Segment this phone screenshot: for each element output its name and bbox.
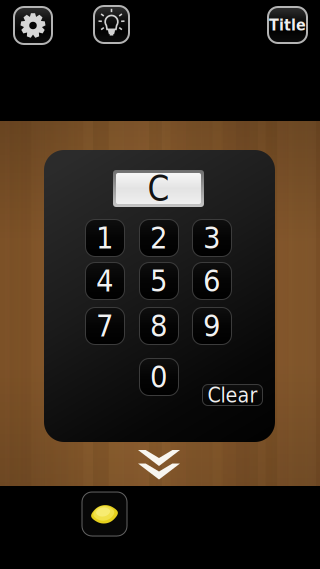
button[interactable]: 5	[139, 262, 179, 300]
staticText: 0	[150, 359, 168, 395]
staticText: 3	[203, 220, 221, 256]
button[interactable]: 3	[192, 219, 232, 257]
staticText: 1	[96, 220, 114, 256]
button[interactable]: Clear	[202, 384, 263, 406]
button[interactable]: 1	[85, 219, 125, 257]
staticText: 8	[150, 308, 168, 344]
button[interactable]: Lemon	[82, 492, 127, 536]
staticText: 9	[203, 308, 221, 344]
staticText: Title	[269, 16, 306, 34]
staticText: 5	[150, 263, 168, 299]
button[interactable]: 0	[139, 358, 179, 396]
button[interactable]: Settings	[14, 7, 52, 44]
button[interactable]: Title	[268, 7, 307, 43]
staticText: 6	[203, 263, 221, 299]
button[interactable]: 6	[192, 262, 232, 300]
button[interactable]: 2	[139, 219, 179, 257]
button[interactable]: 7	[85, 307, 125, 345]
button[interactable]: Light	[94, 6, 129, 43]
staticText: 4	[96, 263, 114, 299]
staticText: 7	[96, 308, 114, 344]
button[interactable]: 8	[139, 307, 179, 345]
button[interactable]: 9	[192, 307, 232, 345]
staticText: 2	[150, 220, 168, 256]
staticText: Clear	[207, 383, 257, 407]
staticText: C	[147, 168, 169, 209]
button[interactable]: 4	[85, 262, 125, 300]
